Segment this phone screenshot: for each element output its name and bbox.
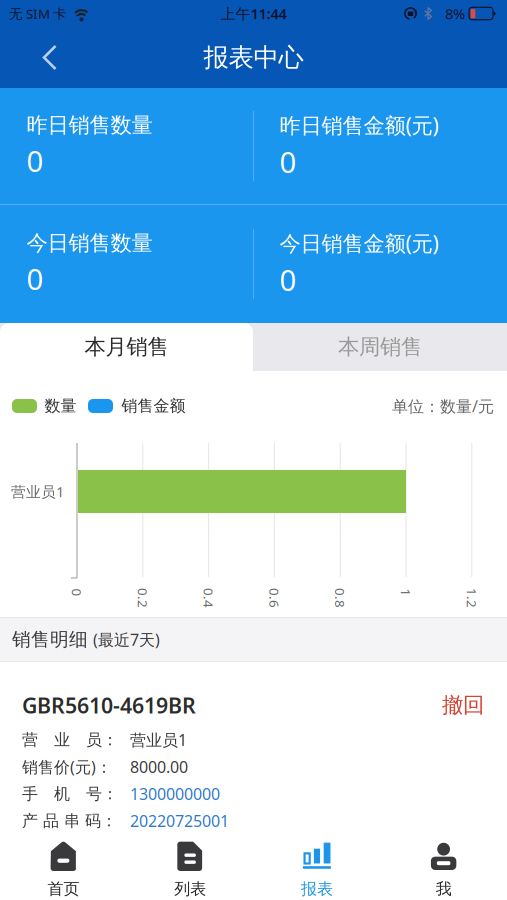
button[interactable]: 1300000000 [130, 783, 220, 804]
staticText: 报表 [301, 879, 333, 899]
staticText: 0.4 [199, 589, 219, 607]
staticText: 产 品 串 码： [22, 811, 117, 831]
staticText: 0.8 [330, 589, 350, 607]
staticText: 报表中心 [203, 42, 303, 73]
staticText: 无 SIM 卡 [9, 5, 66, 22]
staticText: 0 [26, 259, 43, 298]
staticText: 今日销售数量 [26, 230, 152, 256]
staticText: 销售明细 [12, 628, 88, 651]
staticText: 1 [402, 584, 410, 601]
staticText: 单位：数量/元 [392, 395, 494, 417]
button[interactable]: 列表 [127, 840, 254, 900]
button[interactable]: 报表 [253, 840, 380, 900]
staticText: 数量 [44, 396, 76, 416]
staticText: 销售价(元)： [22, 756, 112, 777]
staticText: 昨日销售金额(元) [279, 111, 438, 139]
staticText: 0.2 [133, 589, 153, 607]
staticText: 首页 [47, 879, 79, 899]
staticText: 上午11:44 [220, 4, 286, 23]
button[interactable]: 本月销售 [0, 323, 253, 371]
staticText: 本周销售 [338, 334, 422, 360]
button[interactable]: 我 [380, 840, 507, 900]
button[interactable]: 撤回 [442, 692, 484, 718]
staticText: (最近7天) [93, 629, 160, 650]
staticText: 8000.00 [130, 756, 188, 777]
staticText: 0 [26, 141, 43, 180]
button[interactable]: Back [0, 29, 58, 86]
staticText: 营业员1 [130, 729, 187, 750]
staticText: 0 [279, 260, 296, 299]
staticText: 本月销售 [84, 334, 168, 360]
button[interactable]: 20220725001 [130, 810, 229, 831]
staticText: 0 [73, 584, 81, 601]
staticText: 0 [279, 142, 296, 181]
button[interactable]: 本周销售 [253, 323, 507, 371]
staticText: 8% [445, 4, 465, 23]
button[interactable]: 首页 [0, 840, 127, 900]
staticText: 1.2 [462, 589, 482, 607]
staticText: 撤回 [442, 692, 484, 718]
staticText: GBR5610-4619BR [22, 691, 196, 719]
staticText: 营业员1 [11, 482, 64, 501]
staticText: 列表 [174, 879, 206, 899]
staticText: 20220725001 [130, 810, 229, 831]
staticText: 我 [436, 879, 452, 899]
staticText: 昨日销售数量 [26, 112, 152, 138]
staticText: 今日销售金额(元) [279, 229, 438, 257]
staticText: 销售金额 [121, 396, 185, 416]
staticText: 手 机 号： [22, 784, 118, 804]
staticText: 1300000000 [130, 783, 220, 804]
staticText: 营 业 员： [22, 730, 118, 750]
staticText: 0.6 [264, 589, 284, 607]
